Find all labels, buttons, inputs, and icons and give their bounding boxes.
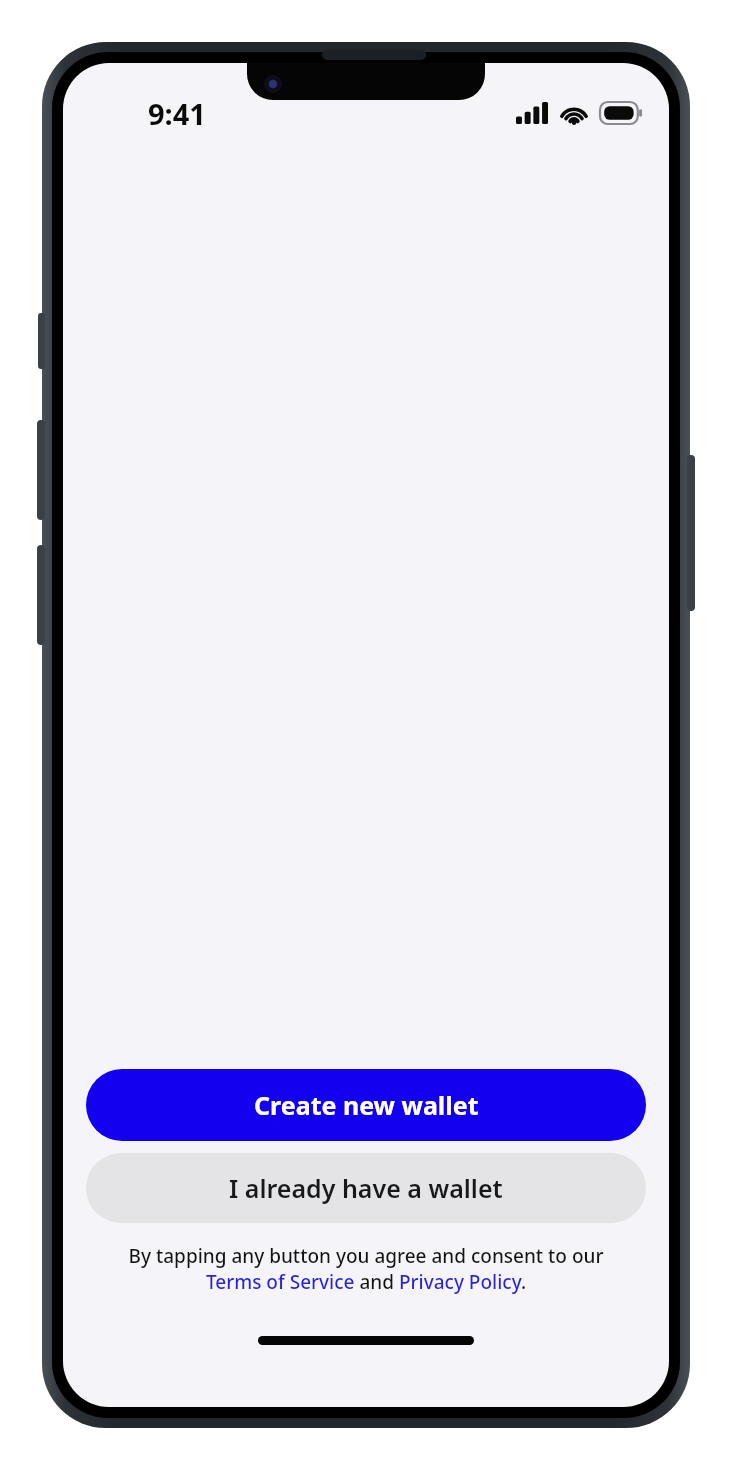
staticText: By tapping any button you agree and cons… <box>87 1243 645 1294</box>
button[interactable]: I already have a wallet <box>86 1153 646 1223</box>
staticText: I already have a wallet <box>229 1171 503 1205</box>
staticText: 9:41 <box>148 94 206 133</box>
button[interactable]: Create new wallet <box>86 1069 646 1141</box>
staticText: Create new wallet <box>254 1088 479 1122</box>
